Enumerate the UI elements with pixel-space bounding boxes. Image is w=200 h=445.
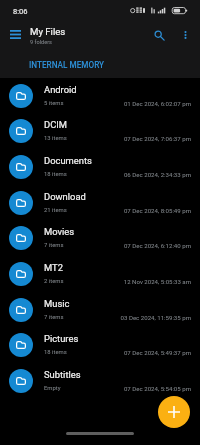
button[interactable]: Android	[0, 78, 200, 114]
button[interactable]: Pictures	[0, 327, 200, 363]
button[interactable]: Add	[158, 396, 190, 428]
staticText: 03 Dec 2024, 11:59:35 pm	[120, 314, 191, 321]
staticText: Pictures	[44, 333, 79, 344]
staticText: 06 Dec 2024, 2:34:33 pm	[123, 171, 191, 178]
staticText: 5 items	[44, 100, 64, 107]
button[interactable]: Music	[0, 292, 200, 328]
button[interactable]: Download	[0, 185, 200, 221]
staticText: 18 items	[44, 349, 67, 356]
staticText: 21 items	[44, 207, 67, 214]
staticText: My Files	[30, 26, 66, 37]
staticText: 8:06	[13, 7, 28, 16]
staticText: Download	[44, 191, 86, 202]
staticText: 07 Dec 2024, 8:05:49 pm	[123, 207, 191, 214]
staticText: 07 Dec 2024, 5:49:37 pm	[123, 349, 191, 356]
staticText: 07 Dec 2024, 7:06:37 pm	[123, 135, 191, 142]
staticText: Subtitles	[44, 369, 81, 380]
button[interactable]: MT2	[0, 256, 200, 292]
button[interactable]: DCIM	[0, 113, 200, 149]
button[interactable]: More options	[174, 24, 196, 46]
staticText: 12 Nov 2024, 5:05:33 am	[123, 278, 191, 285]
staticText: 7 items	[44, 242, 64, 249]
staticText: 07 Dec 2024, 5:54:05 pm	[123, 385, 191, 392]
button[interactable]: Movies	[0, 220, 200, 256]
staticText: Music	[44, 298, 70, 309]
staticText: Android	[44, 84, 77, 95]
staticText: Documents	[44, 155, 92, 166]
staticText: MT2	[44, 262, 63, 273]
staticText: Movies	[44, 226, 75, 237]
staticText: 9 folders	[30, 39, 52, 46]
staticText: 18 items	[44, 171, 67, 178]
button[interactable]: Subtitles	[0, 363, 200, 399]
button[interactable]: Open navigation drawer	[4, 23, 26, 45]
staticText: 07 Dec 2024, 6:12:40 pm	[123, 242, 191, 249]
button[interactable]: Documents	[0, 149, 200, 185]
staticText: 01 Dec 2024, 6:02:07 pm	[123, 100, 191, 107]
staticText: 13 items	[44, 135, 67, 142]
staticText: 2 items	[44, 278, 64, 285]
staticText: 7 items	[44, 314, 64, 321]
staticText: Empty	[44, 385, 61, 392]
staticText: DCIM	[44, 119, 68, 130]
button[interactable]: Search	[147, 23, 171, 47]
staticText: INTERNAL MEMORY	[29, 60, 105, 70]
